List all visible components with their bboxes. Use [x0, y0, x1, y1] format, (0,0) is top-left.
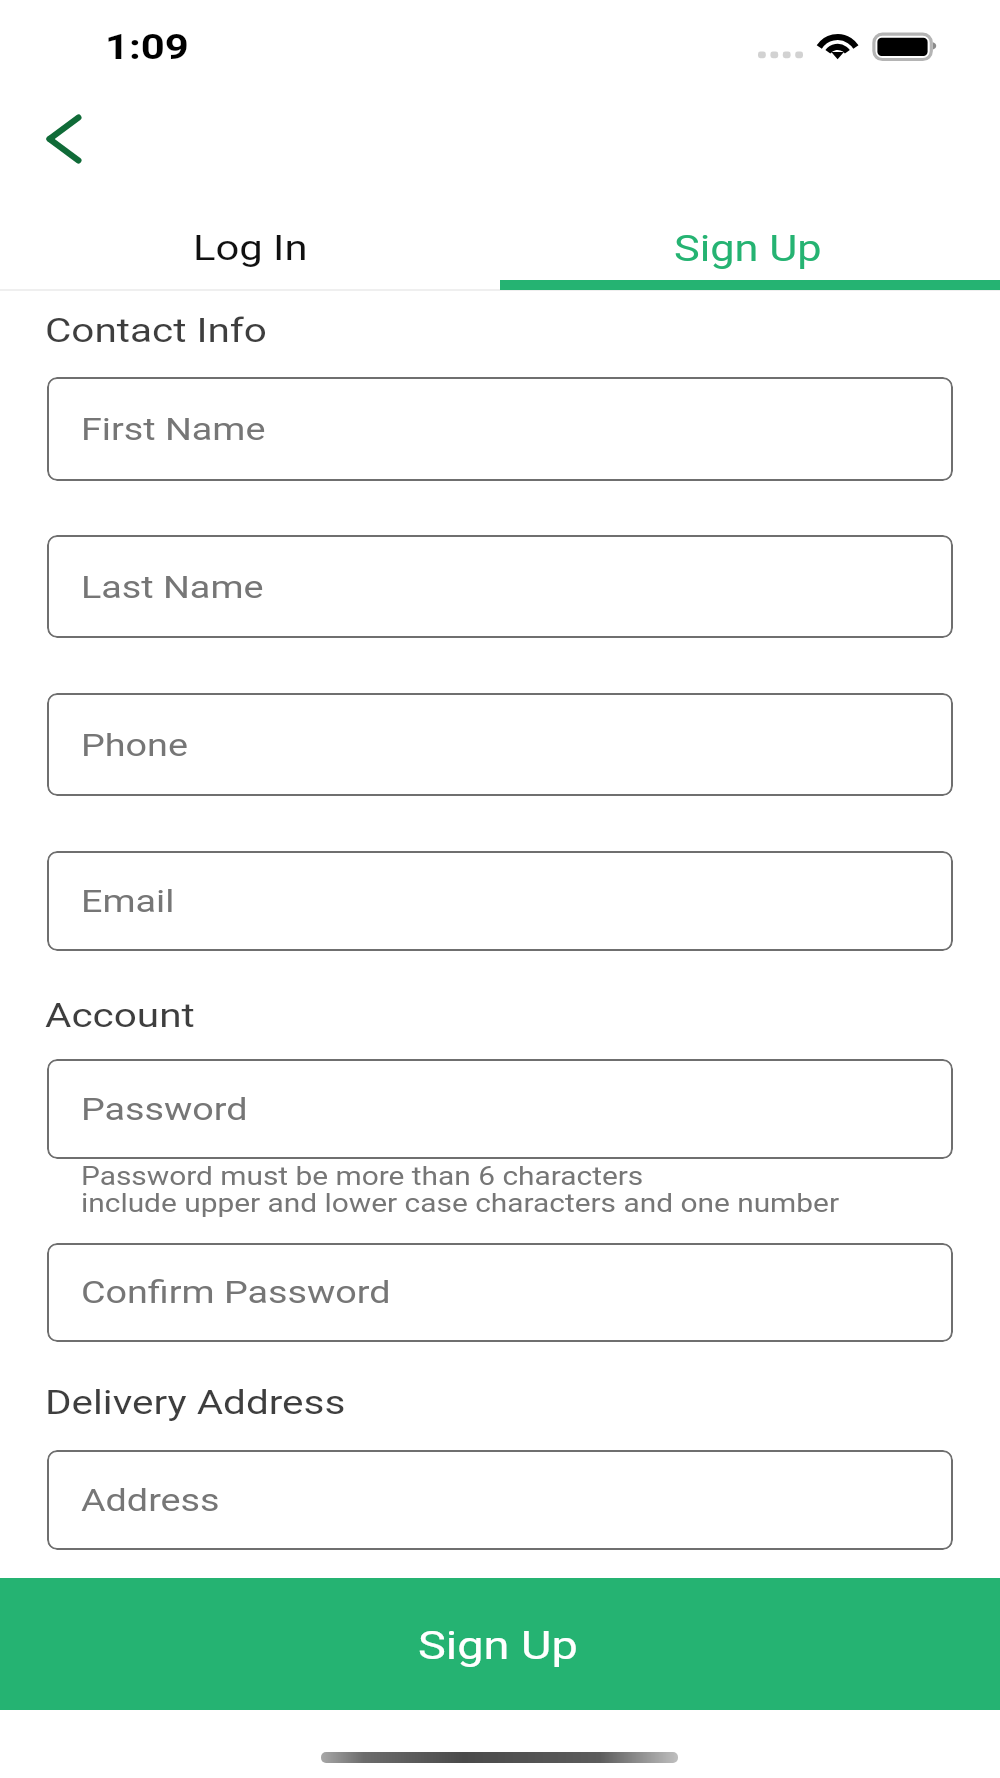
button[interactable]: Phone [47, 693, 953, 796]
staticText: Contact Info [45, 310, 267, 350]
staticText: Last Name [81, 569, 264, 606]
staticText: Address [81, 1482, 220, 1519]
button[interactable]: Sign Up [0, 1578, 1000, 1710]
staticText: Sign Up [674, 227, 823, 270]
staticText: Phone [81, 727, 188, 764]
button[interactable]: Confirm Password [47, 1243, 953, 1342]
button[interactable]: Back [26, 96, 102, 182]
button[interactable]: Sign Up [500, 200, 1000, 290]
staticText: Log In [193, 227, 308, 268]
staticText: Confirm Password [81, 1274, 392, 1311]
button[interactable]: Log In [0, 200, 500, 290]
staticText: Email [81, 883, 175, 920]
staticText: First Name [81, 411, 265, 448]
staticText: Password [81, 1091, 248, 1128]
staticText: Password must be more than 6 characters [81, 1162, 644, 1191]
button[interactable]: Last Name [47, 535, 953, 638]
button[interactable]: Password [47, 1059, 953, 1159]
staticText: 1:09 [105, 26, 189, 67]
staticText: Delivery Address [45, 1382, 346, 1422]
staticText: include upper and lower case characters … [81, 1189, 839, 1218]
staticText: Sign Up [418, 1622, 579, 1668]
button[interactable]: First Name [47, 377, 953, 481]
button[interactable]: Email [47, 851, 953, 951]
staticText: Account [45, 995, 195, 1035]
button[interactable]: Address [47, 1450, 953, 1550]
